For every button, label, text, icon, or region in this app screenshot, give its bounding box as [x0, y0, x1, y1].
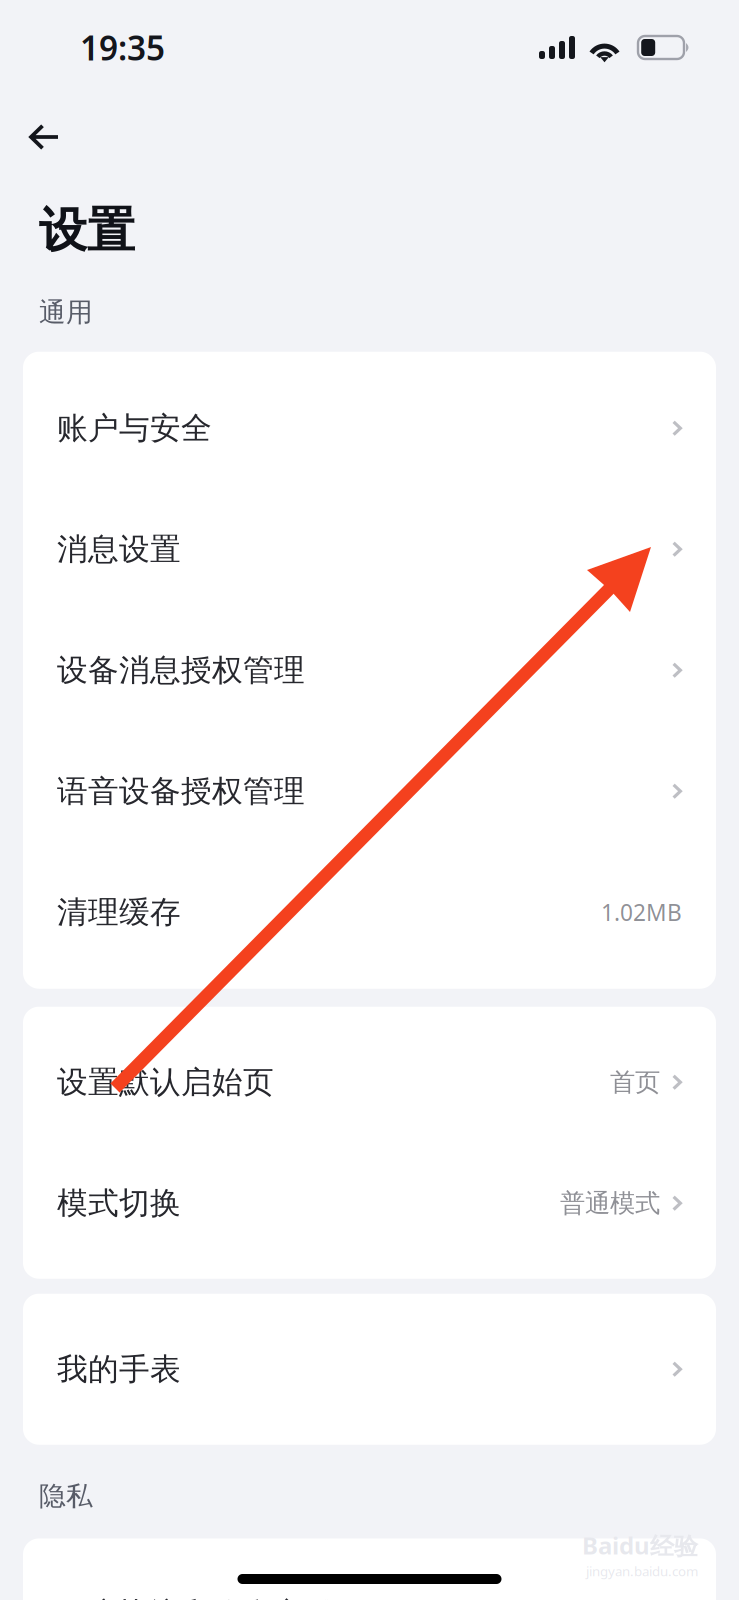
staticText: 隐私 [39, 1480, 93, 1512]
button[interactable]: 消息设置 [23, 489, 716, 610]
staticText: 我的手表 [57, 1350, 181, 1388]
staticText: 通用 [39, 296, 93, 329]
staticText: 用户协议和隐私方针 [57, 1595, 336, 1600]
button[interactable]: 账户与安全 [23, 368, 716, 489]
staticText: 清理缓存 [57, 893, 181, 931]
staticText: 模式切换 [57, 1184, 181, 1222]
staticText: 设置默认启始页 [57, 1063, 274, 1101]
staticText: jingyan.baidu.com [586, 1562, 698, 1580]
button[interactable]: 设备消息授权管理 [23, 610, 716, 731]
staticText: 语音设备授权管理 [57, 772, 305, 810]
button[interactable]: 语音设备授权管理 [23, 731, 716, 852]
staticText: 普通模式 [560, 1188, 660, 1219]
button[interactable]: 清理缓存 [23, 852, 716, 973]
staticText: 设置 [39, 201, 135, 260]
button[interactable]: 用户协议和隐私方针 [23, 1553, 716, 1600]
button[interactable]: Back [0, 98, 88, 160]
staticText: 账户与安全 [57, 409, 212, 447]
button[interactable]: 我的手表 [23, 1309, 716, 1430]
button[interactable]: 模式切换 [23, 1143, 716, 1264]
staticText: 19:35 [80, 25, 165, 70]
staticText: 设备消息授权管理 [57, 651, 305, 689]
staticText: 1.02MB [601, 897, 682, 927]
button[interactable]: 设置默认启始页 [23, 1022, 716, 1143]
staticText: 首页 [610, 1067, 660, 1098]
staticText: Baidu经验 [582, 1529, 698, 1561]
staticText: 消息设置 [57, 530, 181, 568]
